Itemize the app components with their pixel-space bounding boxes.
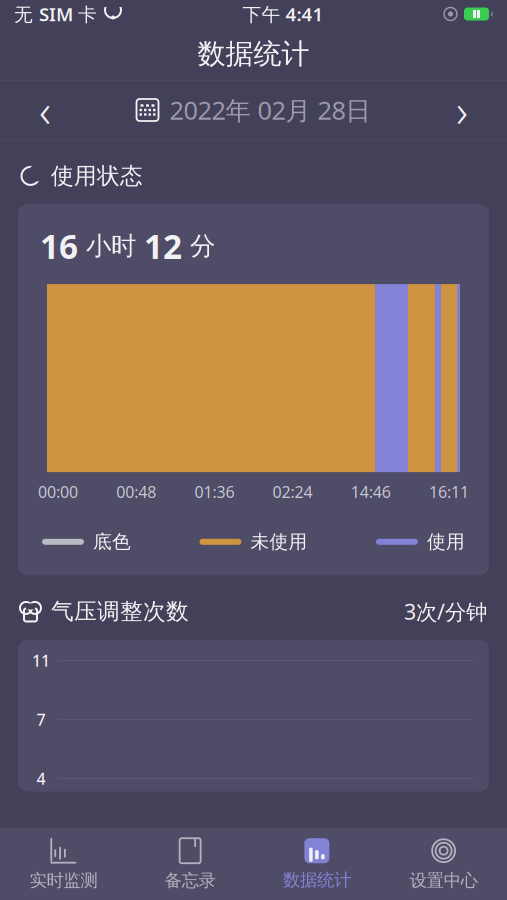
staticText: 未使用 xyxy=(250,530,307,553)
staticText: 4 xyxy=(36,768,45,789)
button[interactable]: 数据统计 xyxy=(253,829,380,899)
staticText: 12 xyxy=(144,224,182,268)
staticText: 3次/分钟 xyxy=(404,597,487,626)
staticText: 使用状态 xyxy=(51,162,143,190)
staticText: 2022年 02月 28日 xyxy=(169,93,370,127)
staticText: 备忘录 xyxy=(165,870,216,891)
staticText: 设置中心 xyxy=(410,870,478,891)
staticText: 下午 4:41 xyxy=(242,2,323,26)
staticText: 数据统计 xyxy=(197,37,309,71)
staticText: 实时监测 xyxy=(29,870,97,891)
staticText: ‹ xyxy=(39,80,51,140)
staticText: 16 xyxy=(40,224,78,268)
staticText: 气压调整次数 xyxy=(51,597,189,625)
staticText: 01:36 xyxy=(194,481,234,502)
button[interactable]: 实时监测 xyxy=(0,829,127,900)
staticText: 00:48 xyxy=(116,481,156,502)
staticText: 分 xyxy=(182,230,215,261)
staticText: 11 xyxy=(32,650,50,671)
staticText: 底色 xyxy=(93,530,131,553)
staticText: 小时 xyxy=(78,230,144,261)
staticText: 使用 xyxy=(427,530,465,553)
staticText: 00:00 xyxy=(38,481,78,502)
staticText: 14:46 xyxy=(351,481,391,502)
button[interactable]: 前一天 xyxy=(12,81,78,139)
staticText: 无 SIM 卡 xyxy=(14,2,97,26)
staticText: 7 xyxy=(36,709,45,730)
button[interactable]: 后一天 xyxy=(429,81,495,139)
staticText: › xyxy=(456,80,468,140)
staticText: 数据统计 xyxy=(283,869,351,890)
staticText: 16:11 xyxy=(429,481,469,502)
staticText: 02:24 xyxy=(273,481,313,502)
button[interactable]: 设置中心 xyxy=(380,829,507,900)
button[interactable]: 备忘录 xyxy=(127,829,254,900)
button[interactable]: 2022年 02月 28日 xyxy=(136,81,370,139)
